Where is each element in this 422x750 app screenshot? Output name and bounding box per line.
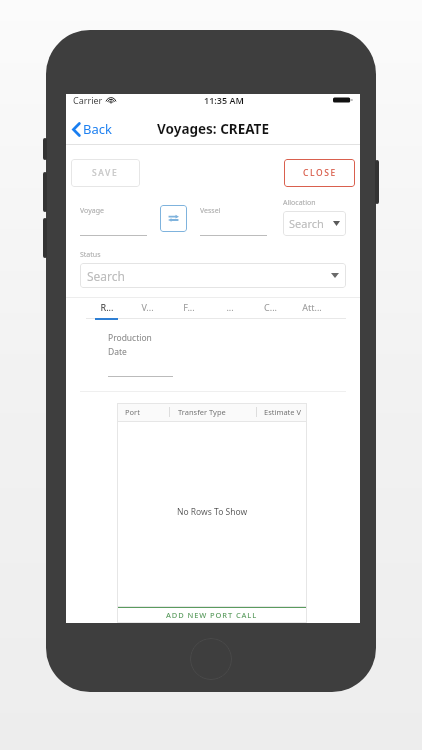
button[interactable]: ...: [209, 298, 250, 316]
staticText: R...: [100, 301, 114, 313]
staticText: Transfer Type: [178, 407, 226, 417]
staticText: Vessel: [200, 206, 221, 216]
staticText: Att...: [302, 301, 322, 313]
staticText: Production: [108, 332, 152, 344]
button[interactable]: CLOSE: [284, 159, 355, 187]
staticText: Estimate V: [264, 407, 302, 417]
button[interactable]: Search: [283, 211, 346, 236]
staticText: Date: [108, 346, 127, 358]
staticText: ...: [226, 301, 234, 313]
button[interactable]: Search: [80, 263, 346, 288]
staticText: Allocation: [283, 198, 316, 208]
staticText: ADD NEW PORT CALL: [166, 610, 258, 620]
staticText: No Rows To Show: [177, 506, 248, 518]
staticText: V...: [141, 301, 154, 313]
staticText: Status: [80, 250, 101, 260]
staticText: Port: [125, 407, 140, 417]
button[interactable]: R...: [86, 298, 127, 316]
button[interactable]: V...: [127, 298, 168, 316]
staticText: Search: [87, 268, 125, 284]
button[interactable]: Att...: [291, 298, 332, 316]
staticText: Search: [289, 216, 324, 231]
staticText: Back: [83, 120, 112, 138]
button[interactable]: Back: [66, 116, 118, 142]
staticText: CLOSE: [303, 167, 337, 179]
button[interactable]: SAVE: [71, 159, 140, 187]
staticText: F...: [183, 301, 195, 313]
button[interactable]: F...: [168, 298, 209, 316]
button[interactable]: Swap voyage and vessel: [160, 205, 187, 232]
button[interactable]: ADD NEW PORT CALL: [117, 607, 307, 623]
staticText: 11:35 AM: [204, 94, 244, 106]
staticText: C...: [264, 301, 277, 313]
staticText: Carrier: [73, 94, 103, 106]
staticText: Voyages: CREATE: [157, 120, 269, 138]
button[interactable]: C...: [250, 298, 291, 316]
staticText: Voyage: [80, 206, 104, 216]
staticText: SAVE: [92, 167, 119, 179]
